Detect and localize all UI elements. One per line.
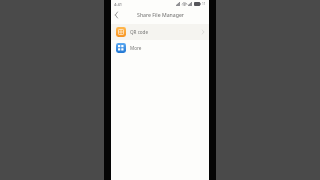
button[interactable]: More [111,40,209,56]
staticText: QR code [130,29,149,35]
staticText: More [130,45,142,51]
staticText: Share File Manager [137,11,184,18]
button[interactable]: Back [111,9,122,20]
button[interactable]: QR code [111,24,209,40]
staticText: 11 [202,2,206,6]
staticText: 4:41 [114,2,122,7]
